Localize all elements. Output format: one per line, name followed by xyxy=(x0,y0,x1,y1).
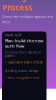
staticText: > write integration tests xyxy=(5,76,39,79)
staticText: checking session storage xyxy=(5,69,39,73)
staticText: Generate multiple options at a time xyxy=(2,14,53,24)
staticText: Running three agents in parallel xyxy=(5,51,41,58)
staticText: Plan: build the new auth flow xyxy=(5,38,43,49)
staticText: > implement token refresh xyxy=(5,61,43,64)
staticText: claude code xyxy=(5,33,22,37)
staticText: Background Process xyxy=(2,0,49,13)
